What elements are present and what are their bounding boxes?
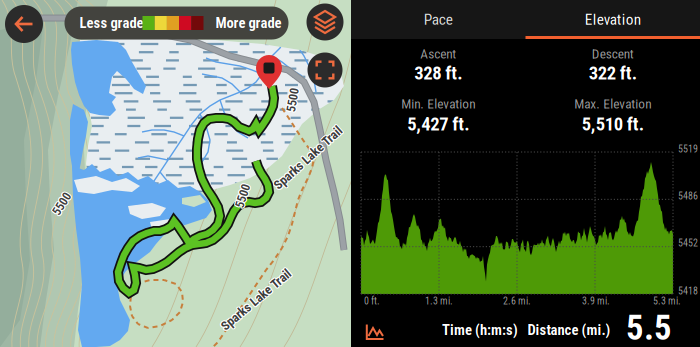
button[interactable]: Map layers [306, 3, 343, 40]
staticText: Sparks Lake Trail [211, 293, 298, 307]
button[interactable]: Fit to screen [307, 52, 342, 87]
staticText: Sparks Lake Trail [265, 150, 352, 165]
staticText: 5500 [280, 93, 304, 107]
staticText: 5500 [281, 93, 305, 107]
staticText: 5500 [282, 94, 306, 108]
staticText: 3.9 mi. [582, 295, 610, 307]
button[interactable]: Chart [365, 324, 384, 339]
staticText: Sparks Lake Trail [265, 151, 352, 166]
staticText: 5500 [230, 188, 254, 202]
staticText: 5500 [49, 197, 73, 211]
staticText: 5500 [51, 197, 75, 211]
staticText: 5.3 mi. [653, 295, 681, 307]
staticText: Ascent [420, 46, 456, 62]
staticText: 5500 [232, 189, 256, 203]
staticText: 5500 [281, 94, 305, 108]
staticText: 322 ft. [589, 62, 637, 84]
staticText: Sparks Lake Trail [214, 293, 301, 307]
staticText: Sparks Lake Trail [266, 151, 353, 165]
staticText: Sparks Lake Trail [212, 291, 299, 306]
staticText: 5500 [231, 188, 255, 202]
staticText: Sparks Lake Trail [212, 292, 299, 307]
staticText: Descent [592, 46, 634, 62]
staticText: 5500 [49, 196, 73, 210]
staticText: 5500 [232, 190, 256, 204]
button[interactable]: Back [5, 5, 43, 43]
staticText: 5500 [230, 189, 254, 203]
staticText: Sparks Lake Trail [212, 293, 299, 307]
staticText: 5500 [281, 92, 305, 106]
staticText: 5500 [280, 94, 304, 108]
staticText: 5,427 ft. [407, 113, 469, 135]
staticText: 5500 [280, 92, 304, 106]
staticText: 5500 [282, 92, 306, 106]
staticText: Less grade [79, 14, 143, 32]
staticText: Max. Elevation [574, 96, 651, 112]
staticText: 5500 [51, 198, 75, 212]
staticText: 5500 [50, 196, 74, 210]
staticText: 1.3 mi. [425, 295, 453, 307]
staticText: 5519 [678, 143, 698, 155]
staticText: Sparks Lake Trail [263, 151, 350, 165]
staticText: Pace [424, 10, 453, 28]
staticText: Sparks Lake Trail [264, 152, 351, 166]
staticText: More grade [215, 14, 281, 32]
staticText: Sparks Lake Trail [213, 293, 300, 308]
staticText: 5500 [231, 190, 255, 204]
staticText: 5.5 [626, 308, 672, 347]
staticText: 5500 [282, 93, 306, 107]
staticText: Elevation [585, 10, 641, 28]
staticText: Sparks Lake Trail [212, 293, 299, 308]
staticText: Sparks Lake Trail [264, 150, 351, 165]
staticText: 5452 [678, 237, 698, 249]
staticText: 5500 [51, 196, 75, 210]
staticText: Sparks Lake Trail [264, 149, 351, 164]
staticText: 5500 [231, 189, 255, 203]
button[interactable]: Elevation [525, 0, 700, 39]
staticText: 5500 [50, 197, 74, 211]
staticText: 5500 [50, 198, 74, 212]
staticText: 0 ft. [364, 295, 380, 307]
staticText: 5,510 ft. [582, 113, 644, 135]
staticText: Sparks Lake Trail [264, 151, 351, 165]
staticText: 2.6 mi. [503, 295, 531, 307]
staticText: 5500 [232, 188, 256, 202]
staticText: Distance (mi.) [527, 321, 610, 339]
staticText: 5500 [49, 198, 73, 212]
button[interactable]: Pace [351, 0, 525, 39]
staticText: 5500 [230, 190, 254, 204]
staticText: 5418 [678, 285, 698, 297]
staticText: Time (h:m:s) [442, 321, 518, 339]
staticText: 5486 [678, 190, 698, 202]
staticText: 328 ft. [414, 62, 462, 84]
staticText: Min. Elevation [401, 96, 475, 112]
staticText: Sparks Lake Trail [212, 294, 299, 308]
staticText: Sparks Lake Trail [264, 151, 351, 166]
staticText: Sparks Lake Trail [213, 292, 300, 307]
